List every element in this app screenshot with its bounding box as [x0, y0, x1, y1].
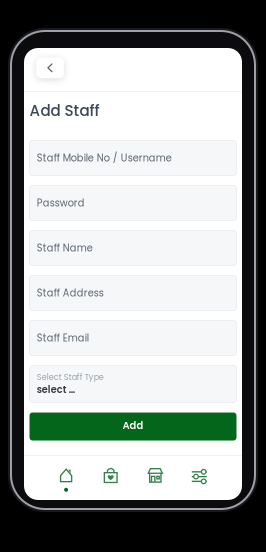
button[interactable]: Home	[44, 456, 88, 500]
button[interactable]: Back	[36, 57, 64, 78]
button[interactable]: Staff Email	[29, 320, 236, 355]
button[interactable]: Password	[29, 185, 236, 220]
button[interactable]: Select Staff Type	[29, 365, 236, 402]
staticText: Add	[122, 418, 143, 432]
staticText: Password	[37, 196, 85, 210]
button[interactable]: Settings	[178, 456, 222, 500]
staticText: Staff Mobile No / Username	[37, 151, 172, 165]
staticText: Select Staff Type	[37, 372, 104, 383]
button[interactable]: Staff Address	[29, 275, 236, 310]
staticText: select ...	[37, 383, 75, 396]
button[interactable]: Staff Name	[29, 230, 236, 265]
staticText: Staff Name	[37, 241, 93, 255]
button[interactable]: Add	[29, 412, 236, 440]
staticText: Add Staff	[29, 100, 99, 121]
button[interactable]: Staff Mobile No / Username	[29, 140, 236, 175]
staticText: Staff Email	[37, 331, 89, 345]
button[interactable]: Orders	[88, 456, 133, 500]
button[interactable]: Shop	[133, 456, 178, 500]
staticText: Staff Address	[37, 286, 104, 300]
